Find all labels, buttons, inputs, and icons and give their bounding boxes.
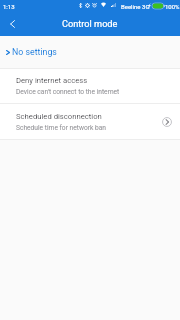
button[interactable]: Back: [0, 12, 24, 36]
staticText: 100%: [165, 3, 180, 10]
staticText: Scheduled disconnection: [16, 112, 102, 121]
staticText: 1:13: [3, 3, 15, 10]
button[interactable]: Scheduled disconnection: [0, 104, 180, 139]
staticText: Control mode: [62, 18, 118, 29]
staticText: No settings: [12, 47, 57, 57]
staticText: Schedule time for network ban: [16, 124, 106, 132]
button[interactable]: No settings: [0, 36, 180, 68]
button[interactable]: Deny internet access: [0, 69, 180, 103]
staticText: Beeline 3G: [121, 3, 150, 10]
staticText: Device can't connect to the internet: [16, 88, 120, 96]
staticText: Deny internet access: [16, 76, 88, 85]
